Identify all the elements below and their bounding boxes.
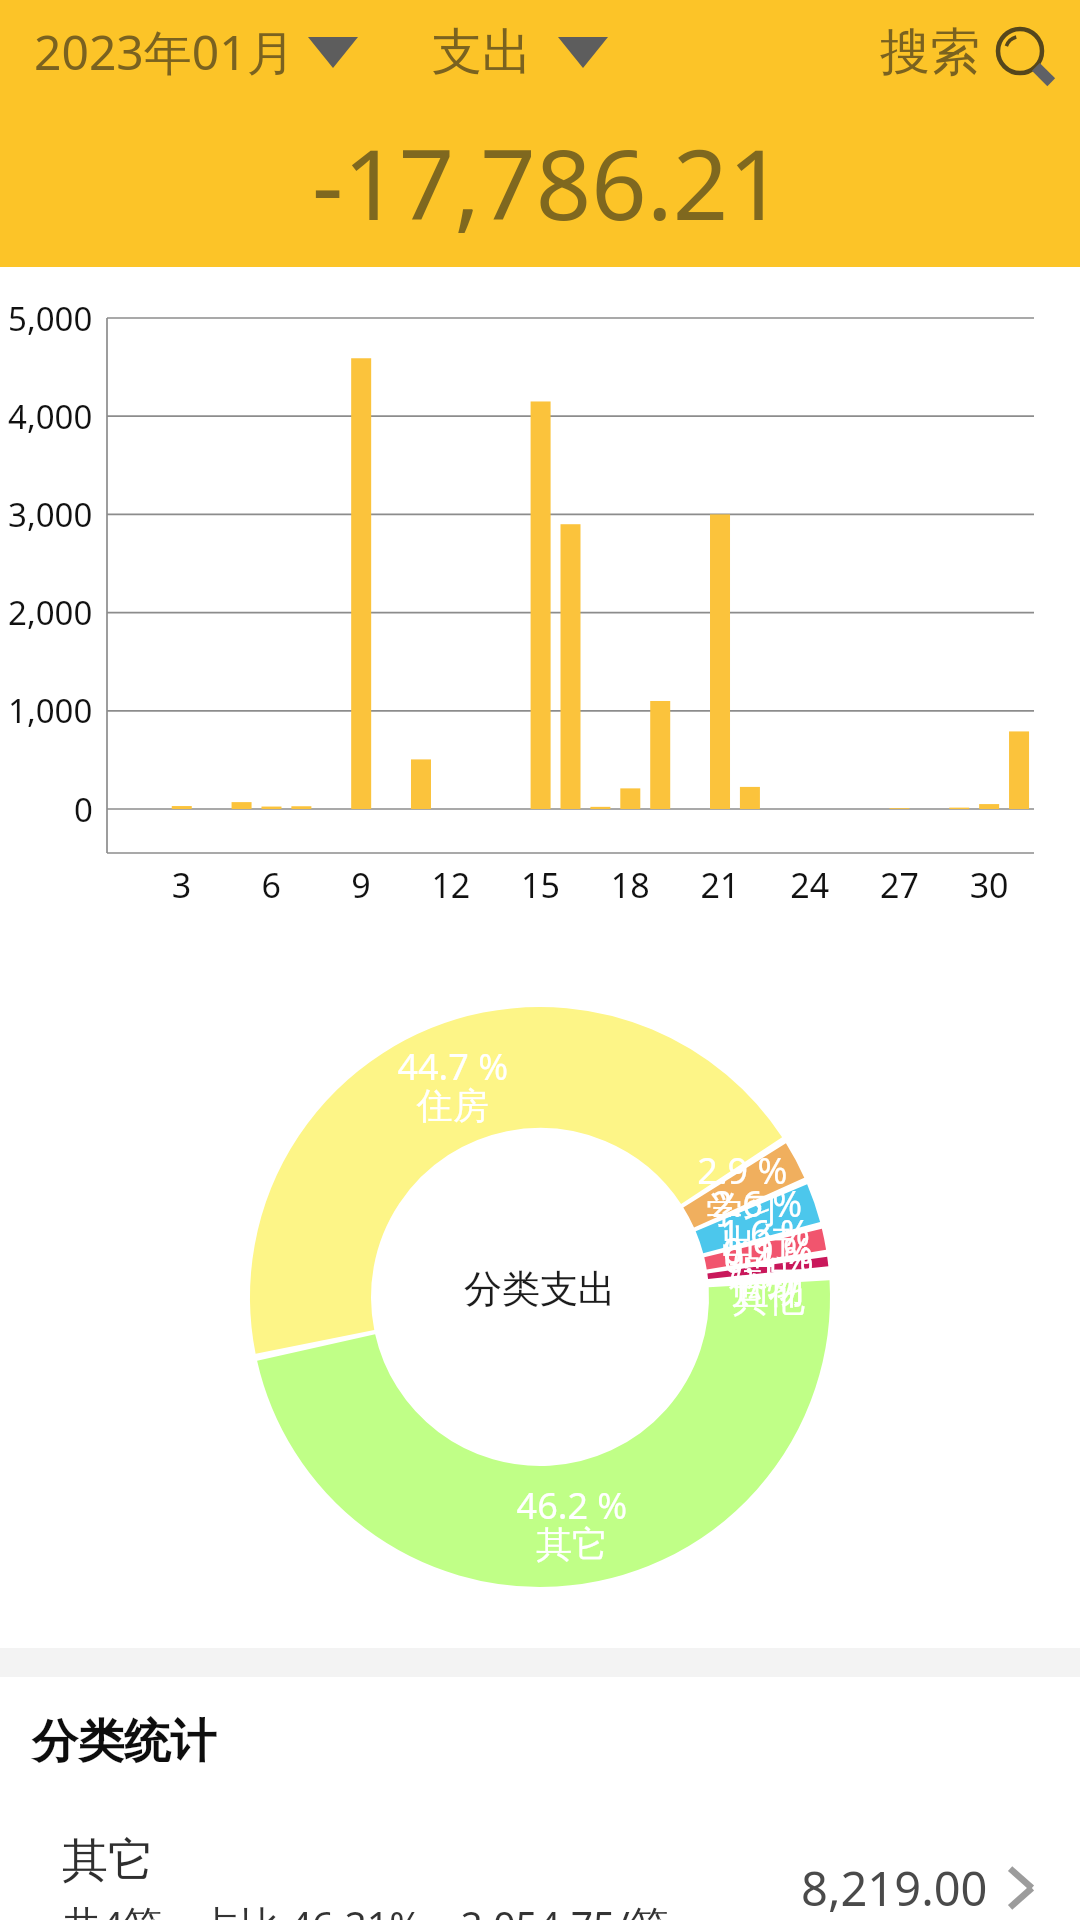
button[interactable]: 支出 (432, 21, 608, 84)
button[interactable]: 2023年01月 (34, 19, 358, 85)
staticText: 分类统计 (32, 1713, 216, 1771)
staticText: 支出 (432, 21, 532, 84)
button[interactable]: 搜索 (880, 21, 1054, 84)
other: Search (998, 23, 1054, 83)
staticText: 8,219.00 (801, 1856, 988, 1920)
staticText: 搜索 (880, 21, 980, 84)
staticText: 共4笔，占比 46.21%，2,054.75/笔 (62, 1897, 669, 1920)
staticText: -17,786.21 (312, 116, 784, 248)
staticText: 其它 (62, 1832, 154, 1890)
button[interactable]: 其它 (0, 1832, 1080, 1920)
staticText: 2023年01月 (34, 19, 295, 85)
